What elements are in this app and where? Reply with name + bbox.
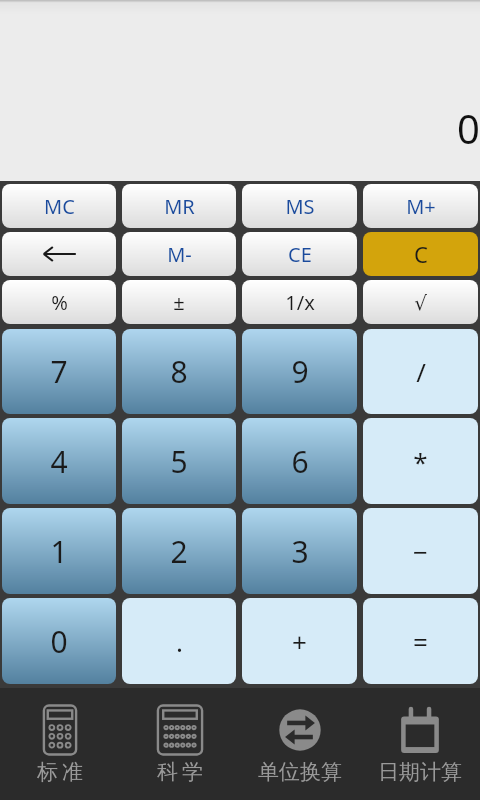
staticText: 7 bbox=[50, 351, 68, 392]
staticText: 单位换算 bbox=[258, 759, 342, 785]
button[interactable]: 1 bbox=[2, 508, 116, 594]
button[interactable]: 0 bbox=[2, 598, 116, 684]
button[interactable]: + bbox=[242, 598, 357, 684]
button[interactable]: = bbox=[363, 598, 478, 684]
staticText: 日期计算 bbox=[378, 759, 462, 785]
button[interactable]: MR bbox=[122, 184, 236, 228]
button[interactable]: M+ bbox=[363, 184, 478, 228]
button[interactable]: √ bbox=[363, 280, 478, 324]
staticText: CE bbox=[288, 241, 312, 268]
button[interactable]: 2 bbox=[122, 508, 236, 594]
staticText: + bbox=[292, 624, 307, 659]
staticText: 1 bbox=[50, 531, 68, 572]
button[interactable]: CE bbox=[242, 232, 357, 276]
button[interactable]: 4 bbox=[2, 418, 116, 504]
staticText: M+ bbox=[406, 193, 436, 220]
staticText: 6 bbox=[291, 441, 309, 482]
button[interactable]: 6 bbox=[242, 418, 357, 504]
staticText: MR bbox=[164, 193, 195, 220]
staticText: 1/x bbox=[285, 289, 315, 316]
staticText: MS bbox=[285, 193, 315, 220]
button[interactable]: 9 bbox=[242, 329, 357, 414]
button[interactable]: MC bbox=[2, 184, 116, 228]
staticText: 9 bbox=[291, 351, 309, 392]
staticText: M- bbox=[167, 241, 192, 268]
staticText: 5 bbox=[170, 441, 188, 482]
button[interactable]: M- bbox=[122, 232, 236, 276]
button[interactable]: 3 bbox=[242, 508, 357, 594]
staticText: 0 bbox=[50, 621, 68, 662]
button[interactable]: − bbox=[363, 508, 478, 594]
button[interactable]: C bbox=[363, 232, 478, 276]
button[interactable]: * bbox=[363, 418, 478, 504]
staticText: 2 bbox=[170, 531, 188, 572]
staticText: 4 bbox=[50, 441, 68, 482]
staticText: C bbox=[414, 239, 428, 269]
staticText: 标准 bbox=[35, 759, 85, 785]
staticText: √ bbox=[414, 291, 427, 314]
staticText: * bbox=[413, 444, 428, 479]
button[interactable]: . bbox=[122, 598, 236, 684]
staticText: MC bbox=[44, 193, 75, 220]
staticText: ± bbox=[173, 289, 185, 316]
staticText: − bbox=[413, 534, 428, 569]
button[interactable]: 8 bbox=[122, 329, 236, 414]
button[interactable]: Standard calculator bbox=[0, 688, 120, 800]
staticText: 3 bbox=[291, 531, 309, 572]
button[interactable]: / bbox=[363, 329, 478, 414]
button[interactable]: % bbox=[2, 280, 116, 324]
staticText: 0 bbox=[457, 101, 480, 155]
button[interactable]: Unit conversion bbox=[240, 688, 360, 800]
button[interactable]: 1/x bbox=[242, 280, 357, 324]
button[interactable]: ± bbox=[122, 280, 236, 324]
staticText: 科学 bbox=[155, 759, 205, 785]
staticText: 8 bbox=[170, 351, 188, 392]
staticText: / bbox=[416, 354, 426, 389]
button[interactable]: Scientific calculator bbox=[120, 688, 240, 800]
button[interactable]: Date calculation bbox=[360, 688, 480, 800]
button[interactable]: 5 bbox=[122, 418, 236, 504]
staticText: . bbox=[176, 624, 183, 659]
staticText: % bbox=[51, 289, 68, 316]
button[interactable]: MS bbox=[242, 184, 357, 228]
button[interactable]: Backspace bbox=[2, 232, 116, 276]
button[interactable]: 7 bbox=[2, 329, 116, 414]
staticText: = bbox=[413, 624, 428, 659]
